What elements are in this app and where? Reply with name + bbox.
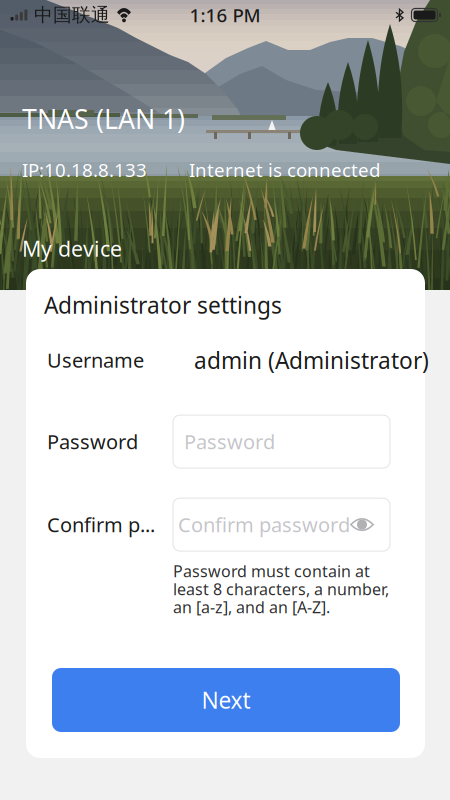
staticText: Confirm password [178, 511, 350, 538]
button[interactable]: Next [52, 668, 400, 732]
staticText: TNAS (LAN 1) [22, 101, 185, 136]
staticText: Next [201, 685, 250, 715]
staticText: Username [47, 347, 144, 373]
staticText: IP:10.18.8.133 [22, 157, 147, 182]
staticText: Password must contain at [173, 560, 370, 582]
staticText: admin (Administrator) [194, 345, 429, 375]
staticText: 中国联通 [34, 3, 110, 26]
staticText: Password [47, 428, 138, 455]
staticText: an [a-z], and an [A-Z]. [173, 596, 330, 618]
staticText: Internet is connected [189, 157, 380, 182]
staticText: Administrator settings [44, 290, 282, 320]
staticText: Password [184, 428, 275, 455]
staticText: Confirm p... [47, 511, 155, 538]
staticText: least 8 characters, a number, [173, 578, 389, 600]
staticText: My device [22, 234, 122, 262]
staticText: 1:16 PM [189, 3, 260, 27]
